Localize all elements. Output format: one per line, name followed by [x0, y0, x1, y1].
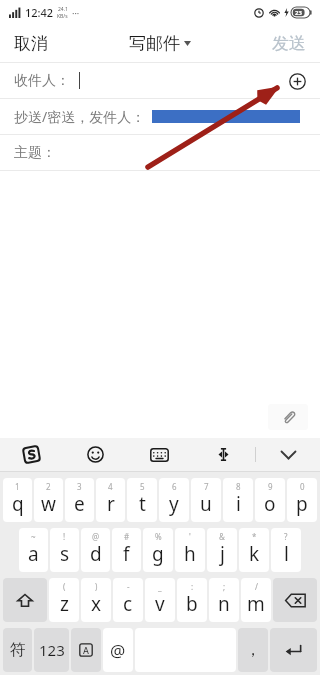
staticText: o	[264, 491, 276, 517]
staticText: #	[124, 531, 130, 542]
button[interactable]: 1	[3, 478, 32, 522]
staticText: u	[200, 491, 212, 517]
staticText: l	[284, 541, 289, 567]
button[interactable]: -	[113, 578, 143, 622]
staticText: y	[169, 491, 179, 517]
staticText: 0	[300, 481, 305, 492]
staticText: 取消	[14, 33, 48, 54]
staticText: 3	[77, 481, 82, 492]
staticText: 主题：	[14, 144, 56, 162]
button[interactable]: Enter	[270, 628, 317, 672]
staticText: 收件人：	[14, 72, 70, 90]
button[interactable]: /	[241, 578, 271, 622]
staticText: @	[110, 639, 126, 662]
button[interactable]: !	[50, 528, 79, 572]
button[interactable]: 写邮件	[129, 24, 191, 62]
button[interactable]: 9	[255, 478, 285, 522]
button[interactable]: ~	[19, 528, 48, 572]
button[interactable]: 7	[191, 478, 221, 522]
button[interactable]: 主题：	[0, 135, 320, 170]
staticText: f	[123, 541, 130, 567]
button[interactable]: '	[175, 528, 205, 572]
staticText: ，	[245, 640, 261, 660]
staticText: 符	[10, 640, 26, 660]
staticText: 5	[140, 481, 145, 492]
button[interactable]: Move cursor	[191, 438, 255, 471]
staticText: 12:42	[25, 5, 54, 20]
staticText: j	[220, 541, 225, 567]
button[interactable]: Delete	[273, 578, 317, 622]
button[interactable]: Add recipient	[284, 68, 310, 94]
button[interactable]: %	[143, 528, 173, 572]
button[interactable]: _	[145, 578, 175, 622]
button[interactable]: *	[239, 528, 269, 572]
staticText: 23	[295, 9, 302, 17]
staticText: *	[252, 531, 257, 542]
staticText: /	[255, 581, 258, 592]
button[interactable]: 4	[96, 478, 125, 522]
button[interactable]: Shift	[3, 578, 47, 622]
button[interactable]: 0	[287, 478, 317, 522]
staticText: 9	[268, 481, 273, 492]
staticText: k	[249, 541, 260, 567]
staticText: z	[60, 591, 69, 617]
button[interactable]: @	[103, 628, 133, 672]
staticText: -	[127, 581, 130, 592]
staticText: 7	[204, 481, 209, 492]
staticText: x	[91, 591, 102, 617]
staticText: ···	[72, 7, 80, 19]
staticText: 6	[172, 481, 177, 492]
button[interactable]: Hide keyboard	[256, 438, 320, 471]
button[interactable]: #	[112, 528, 141, 572]
button[interactable]: ;	[209, 578, 239, 622]
button[interactable]: 8	[223, 478, 253, 522]
staticText: ~	[31, 531, 36, 542]
button[interactable]: Switch language	[71, 628, 101, 672]
staticText: s	[60, 541, 70, 567]
button[interactable]: )	[81, 578, 111, 622]
button[interactable]: 抄送/密送，发件人：	[0, 99, 320, 134]
button[interactable]: Input method	[0, 438, 63, 471]
button[interactable]: 收件人：	[0, 63, 320, 98]
button[interactable]: 取消	[14, 24, 48, 62]
button[interactable]: 123	[34, 628, 69, 672]
button[interactable]: 3	[65, 478, 94, 522]
staticText: (	[63, 581, 66, 592]
button[interactable]: &	[207, 528, 237, 572]
button[interactable]: Keyboard layout	[127, 438, 191, 471]
staticText: _	[158, 581, 162, 592]
button[interactable]: 5	[127, 478, 157, 522]
staticText: 123	[39, 640, 65, 660]
button[interactable]: Emoji	[63, 438, 127, 471]
staticText: e	[74, 491, 85, 517]
button[interactable]: Attach file	[268, 404, 308, 430]
staticText: 2	[46, 481, 51, 492]
button[interactable]: ，	[238, 628, 268, 672]
button[interactable]: @	[81, 528, 110, 572]
button[interactable]: ?	[271, 528, 301, 572]
staticText: :	[191, 581, 194, 592]
staticText: 8	[236, 481, 241, 492]
staticText: '	[189, 531, 191, 542]
staticText: ;	[223, 581, 226, 592]
button[interactable]: 发送	[272, 24, 306, 62]
staticText: )	[95, 581, 98, 592]
staticText: i	[236, 491, 241, 517]
staticText: q	[12, 491, 24, 517]
button[interactable]: 6	[159, 478, 189, 522]
staticText: m	[247, 591, 265, 617]
staticText: a	[28, 541, 39, 567]
staticText: h	[184, 541, 196, 567]
staticText: !	[63, 531, 66, 542]
staticText: %	[155, 531, 162, 542]
staticText: r	[107, 491, 115, 517]
staticText: @	[92, 531, 100, 542]
staticText: n	[218, 591, 230, 617]
button[interactable]: 2	[34, 478, 63, 522]
staticText: 24.1	[58, 6, 68, 13]
button[interactable]: :	[177, 578, 207, 622]
staticText: 发送	[272, 33, 306, 54]
button[interactable]: 符	[3, 628, 32, 672]
button[interactable]: (	[49, 578, 79, 622]
